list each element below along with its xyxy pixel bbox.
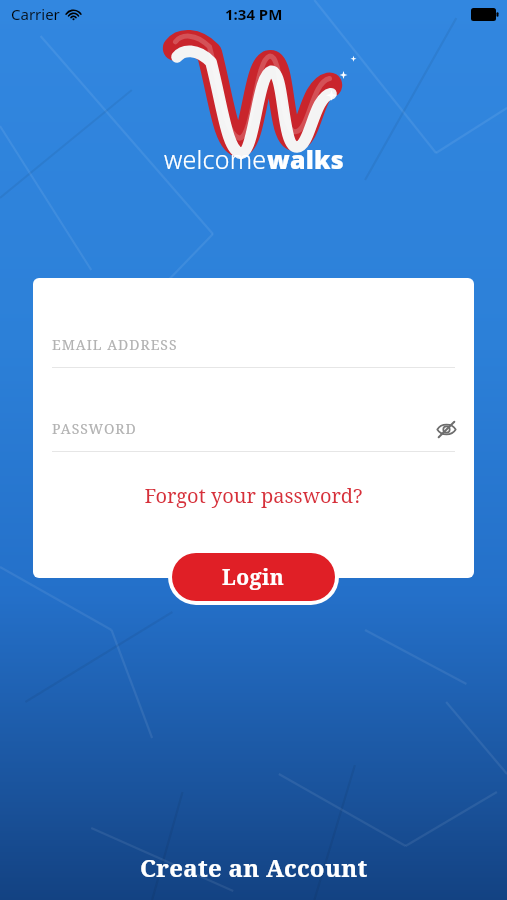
- button[interactable]: PASSWORD: [33, 406, 474, 451]
- staticText: 1:34 PM: [225, 4, 283, 24]
- button[interactable]: Create an Account: [0, 834, 507, 900]
- staticText: Create an Account: [140, 851, 368, 884]
- staticText: welcome: [164, 142, 267, 176]
- staticText: Carrier: [11, 4, 60, 24]
- button[interactable]: Login: [172, 553, 335, 601]
- button[interactable]: Show password: [428, 411, 464, 447]
- staticText: Login: [222, 563, 285, 592]
- staticText: walks: [267, 142, 344, 176]
- staticText: EMAIL ADDRESS: [52, 335, 178, 354]
- button[interactable]: EMAIL ADDRESS: [33, 322, 474, 367]
- button[interactable]: Forgot your password?: [144, 482, 363, 509]
- staticText: PASSWORD: [52, 419, 137, 438]
